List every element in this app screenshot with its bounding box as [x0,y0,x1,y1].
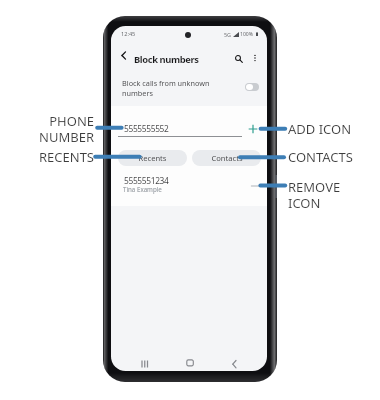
staticText: Block calls from unknown numbers [122,78,210,98]
staticText: 5G [224,31,232,38]
button[interactable]: Back [116,49,129,62]
staticText: CONTACTS [288,148,353,166]
staticText: Recents [138,153,167,163]
staticText: 100% [240,31,253,38]
button[interactable]: Add [247,123,259,135]
button[interactable]: Block calls from unknown numbers [111,74,267,105]
button[interactable]: Recent apps [137,356,153,371]
button[interactable]: Remove [250,180,262,192]
staticText: Contacts [211,153,243,163]
button[interactable]: 5555551234 [111,172,267,200]
staticText: REMOVE ICON [288,178,341,211]
button[interactable]: Search [232,52,244,64]
staticText: RECENTS [0,148,94,166]
button[interactable]: Contacts [192,150,261,166]
staticText: Block numbers [134,53,199,66]
button[interactable]: Recents [118,150,187,166]
staticText: 5555551234 [124,175,169,186]
button[interactable]: Home [182,356,198,371]
staticText: PHONE NUMBER [0,112,94,145]
staticText: Tina Example [123,185,162,193]
button[interactable]: More options [249,52,261,64]
staticText: 12:45 [121,30,136,38]
staticText: ADD ICON [288,120,352,138]
button[interactable]: 5555555552 [111,106,267,146]
staticText: 5555555552 [124,123,169,134]
button[interactable]: Back [227,356,243,371]
